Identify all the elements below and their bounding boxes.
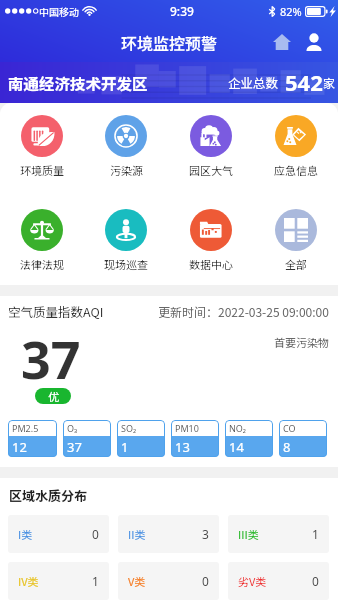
button[interactable]: NO₂ (225, 420, 273, 457)
button[interactable]: Profile (298, 26, 330, 58)
staticText: 企业总数 (228, 73, 279, 91)
staticText: II类 (128, 526, 146, 542)
staticText: 应急信息 (274, 162, 318, 178)
staticText: 中国移动 (39, 4, 79, 18)
staticText: 环境监控预警 (121, 31, 218, 54)
staticText: 0 (92, 526, 99, 542)
button[interactable]: V类 (118, 562, 219, 600)
staticText: 空气质量指数AQI (8, 302, 104, 320)
button[interactable]: Home (266, 26, 298, 58)
button[interactable]: 数据中心 (168, 209, 253, 272)
staticText: I类 (18, 526, 33, 542)
staticText: 全部 (285, 256, 307, 272)
staticText: SO₂ (121, 422, 137, 434)
staticText: 现场巡查 (104, 256, 148, 272)
staticText: O₃ (67, 422, 78, 434)
button[interactable]: CO (279, 420, 327, 457)
staticText: 13 (175, 438, 190, 456)
button[interactable]: PM2.5 (8, 420, 57, 457)
button[interactable]: 劣V类 (228, 562, 329, 600)
staticText: 区域水质分布 (9, 486, 88, 505)
button[interactable]: 现场巡查 (84, 209, 168, 272)
staticText: 环境质量 (20, 162, 64, 178)
button[interactable]: 污染源 (84, 115, 168, 178)
button[interactable]: IV类 (8, 562, 109, 600)
button[interactable]: I类 (8, 515, 109, 553)
staticText: IV类 (18, 573, 39, 589)
staticText: 园区大气 (189, 162, 233, 178)
button[interactable]: 环境质量 (0, 115, 84, 178)
staticText: 37 (21, 323, 81, 394)
staticText: 1 (121, 438, 129, 456)
staticText: 3 (202, 526, 209, 542)
button[interactable]: II类 (118, 515, 219, 553)
staticText: 数据中心 (189, 256, 233, 272)
staticText: 37 (67, 438, 82, 456)
staticText: CO (283, 422, 296, 434)
button[interactable]: III类 (228, 515, 329, 553)
staticText: 0 (202, 573, 209, 589)
staticText: 9:39 (170, 3, 194, 19)
button[interactable]: 法律法规 (0, 209, 84, 272)
staticText: 1 (312, 526, 319, 542)
staticText: 8 (283, 438, 291, 456)
button[interactable]: O₃ (63, 420, 111, 457)
staticText: 首要污染物 (274, 334, 329, 350)
button[interactable]: 园区大气 (168, 115, 253, 178)
staticText: 1 (92, 573, 99, 589)
staticText: 更新时间：2022-03-25 09:00:00 (158, 303, 329, 320)
staticText: 82% (280, 4, 302, 19)
button[interactable]: 应急信息 (253, 115, 338, 178)
button[interactable]: 优 (35, 388, 71, 404)
staticText: 14 (229, 438, 244, 456)
staticText: 优 (48, 388, 59, 404)
button[interactable]: PM10 (171, 420, 219, 457)
staticText: 南通经济技术开发区 (8, 72, 148, 94)
staticText: 12 (12, 438, 27, 456)
staticText: 污染源 (110, 162, 143, 178)
staticText: 法律法规 (20, 256, 64, 272)
staticText: V类 (128, 573, 146, 589)
staticText: NO₂ (229, 422, 247, 434)
staticText: 542 (285, 67, 323, 97)
button[interactable]: 全部 (253, 209, 338, 272)
staticText: III类 (238, 526, 259, 542)
button[interactable]: SO₂ (117, 420, 165, 457)
staticText: PM2.5 (12, 422, 39, 434)
staticText: PM10 (175, 422, 199, 434)
staticText: 0 (312, 573, 319, 589)
staticText: 劣V类 (238, 573, 267, 589)
staticText: 家 (323, 74, 336, 91)
